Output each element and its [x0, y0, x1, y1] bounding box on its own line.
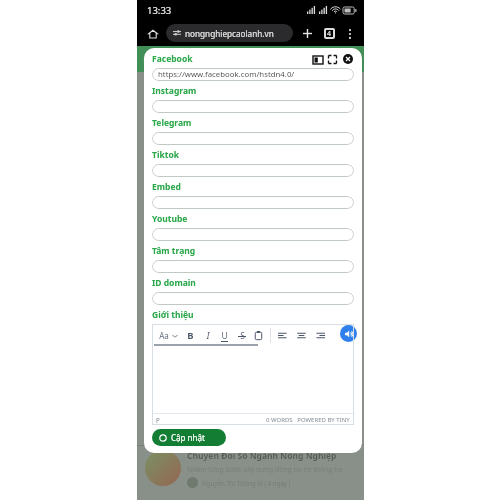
- staticText: nongnghiepcaolanh.vn: [185, 28, 274, 39]
- staticText: Tâm trạng: [152, 245, 196, 257]
- staticText: Telegram: [152, 117, 192, 129]
- button[interactable]: Bold: [184, 329, 197, 342]
- button[interactable]: [152, 100, 354, 113]
- button[interactable]: Align left: [276, 329, 289, 342]
- staticText: 0 WORDS POWERED BY TINY: [266, 416, 350, 424]
- button[interactable]: Font size: [157, 329, 170, 342]
- button[interactable]: More options: [342, 26, 357, 41]
- staticText: Youtube: [152, 213, 188, 225]
- button[interactable]: Strikethrough: [235, 329, 248, 342]
- staticText: Facebook: [152, 53, 193, 65]
- button[interactable]: Split view: [312, 54, 323, 65]
- button[interactable]: Shop: [318, 50, 336, 68]
- staticText: Tìm từ khóa, ID: [161, 55, 216, 65]
- button[interactable]: Home: [144, 25, 161, 42]
- staticText: Hồ Phước Lợi ( 23 giờ ): [164, 430, 233, 439]
- button[interactable]: nongnghiepcaolanh.vn: [166, 24, 293, 42]
- button[interactable]: Expand: [327, 54, 338, 65]
- button[interactable]: Read aloud: [340, 325, 357, 342]
- staticText: Embed: [152, 181, 181, 193]
- button[interactable]: Italic: [201, 329, 214, 342]
- button[interactable]: [152, 228, 354, 241]
- staticText: U: [221, 330, 228, 342]
- button[interactable]: New tab: [299, 25, 316, 42]
- button[interactable]: Profile: [297, 50, 315, 68]
- button[interactable]: Paste: [252, 329, 265, 342]
- staticText: P: [156, 416, 160, 424]
- button[interactable]: Close: [342, 53, 354, 65]
- button[interactable]: [152, 292, 354, 305]
- button[interactable]: Align center: [295, 329, 308, 342]
- staticText: I: [206, 329, 210, 342]
- button[interactable]: Tabs: [321, 25, 338, 42]
- staticText: https://www.facebook.com/hstdn4.0/: [158, 69, 295, 80]
- staticText: 4: [327, 29, 332, 39]
- staticText: Tiktok: [152, 149, 179, 161]
- staticText: Nguyễn Thị Tường Vi ( 4 ngày ): [202, 479, 291, 487]
- staticText: Aa: [159, 330, 169, 341]
- button[interactable]: Align right: [314, 329, 327, 342]
- button[interactable]: [152, 164, 354, 177]
- button[interactable]: [152, 132, 354, 145]
- staticText: Nhằm từng bước xây dựng đồng bộ hệ thống…: [187, 465, 343, 474]
- button[interactable]: Tìm từ khóa, ID: [143, 51, 251, 68]
- button[interactable]: [152, 260, 354, 273]
- staticText: 13:33: [147, 4, 172, 17]
- button[interactable]: [152, 346, 354, 413]
- button[interactable]: https://www.facebook.com/hstdn4.0/: [152, 68, 354, 81]
- staticText: B: [187, 329, 194, 342]
- staticText: Giới thiệu: [152, 309, 194, 321]
- button[interactable]: [152, 196, 354, 209]
- button[interactable]: Menu: [339, 50, 358, 69]
- button[interactable]: Underline: [218, 329, 231, 342]
- button[interactable]: Cập nhật: [152, 429, 226, 446]
- staticText: ID domain: [152, 277, 196, 289]
- staticText: S: [240, 330, 245, 342]
- staticText: Cập nhật: [171, 432, 205, 443]
- staticText: Chuyển Đổi Số Ngành Nông Nghiệp: [187, 450, 337, 462]
- staticText: Instagram: [152, 85, 197, 97]
